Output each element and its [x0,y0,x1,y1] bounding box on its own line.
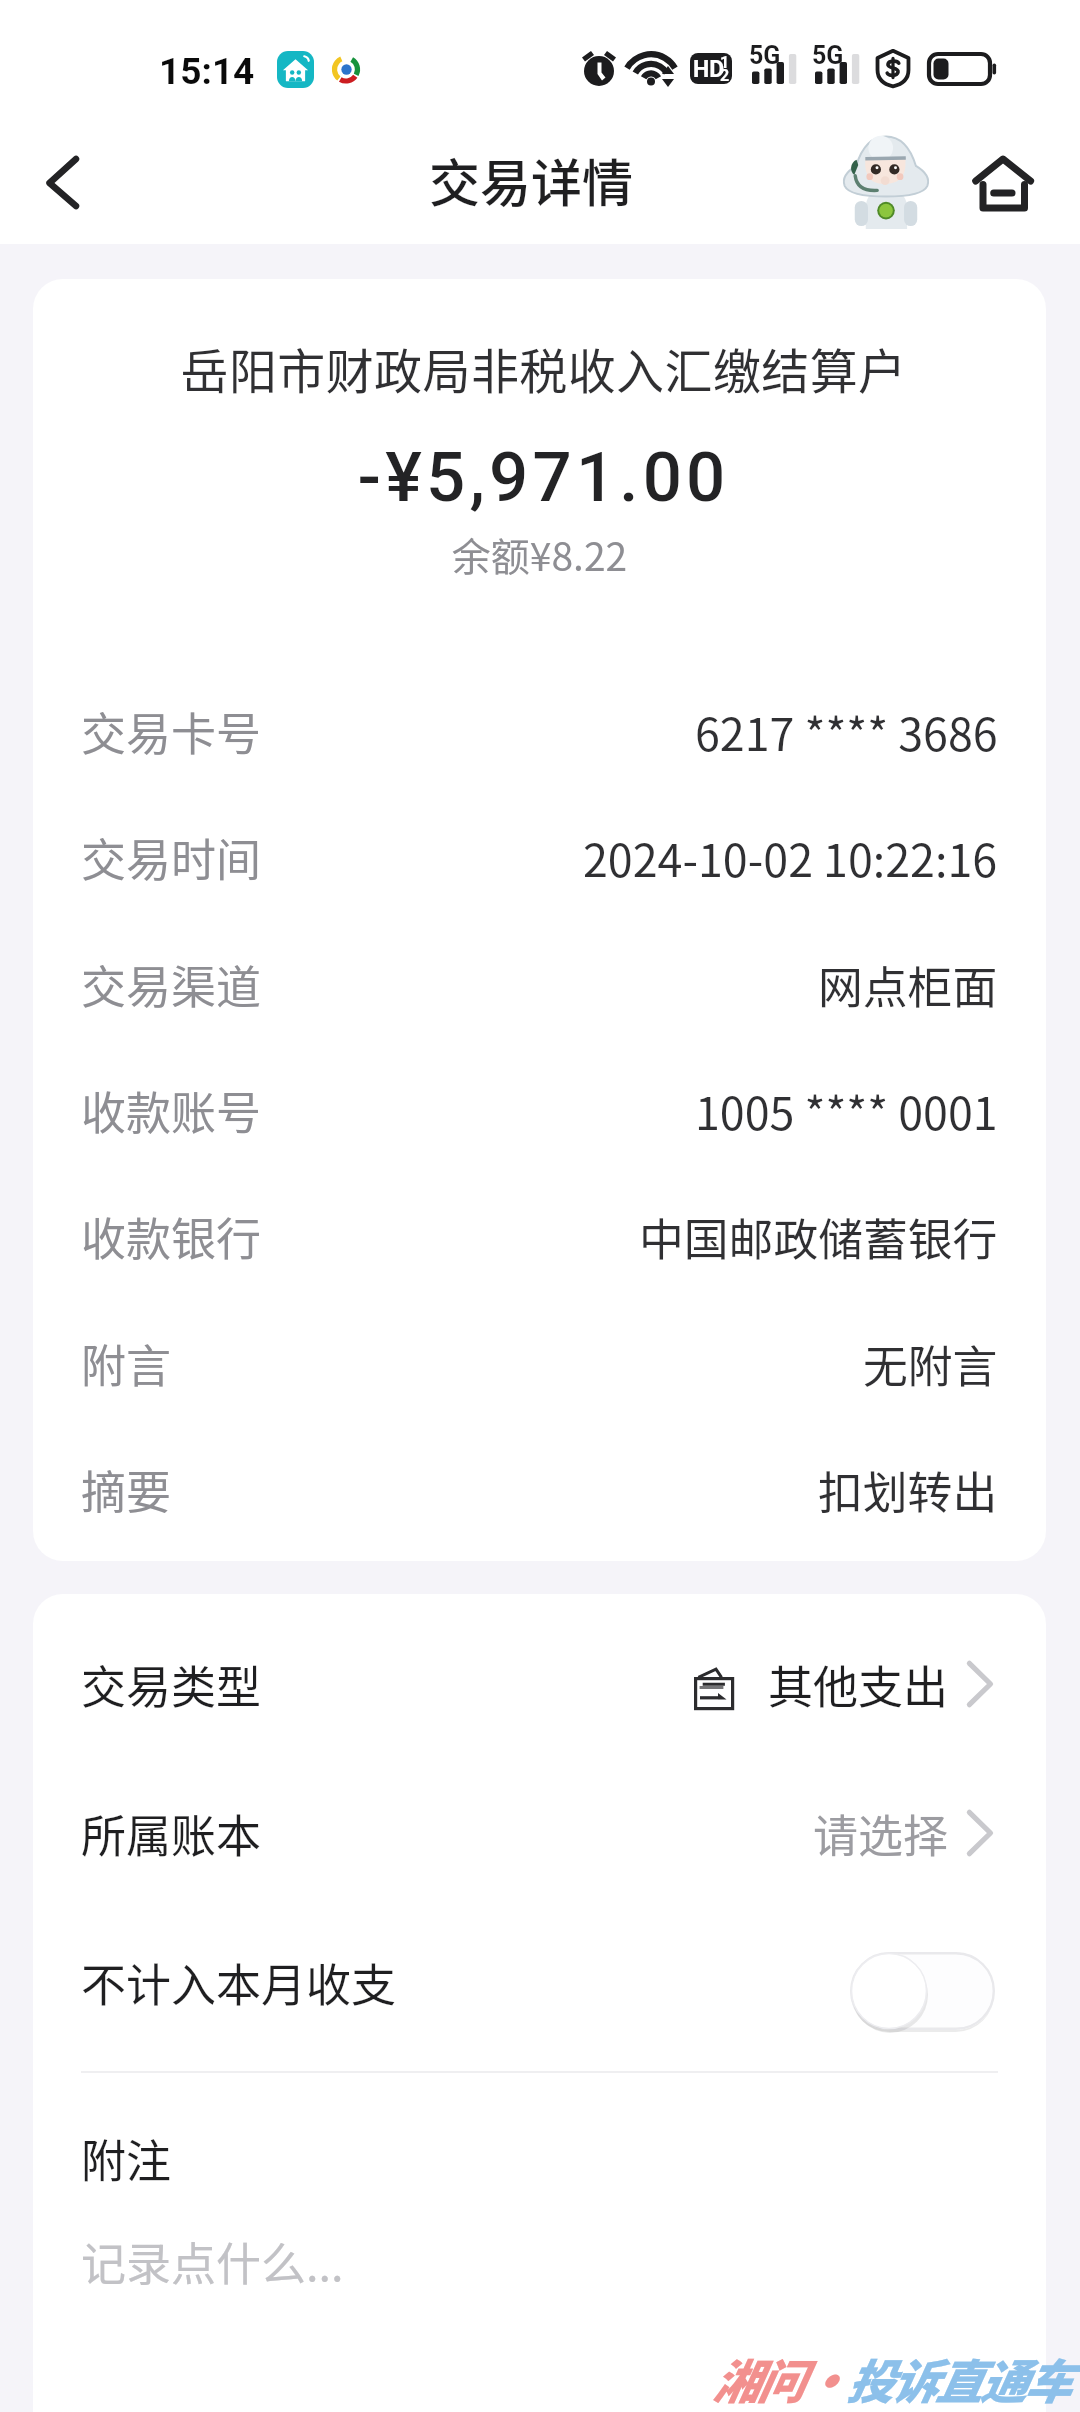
staticText: 1005 **** 0001 [695,1078,998,1143]
button[interactable]: Assistant [842,133,930,230]
staticText: 不计入本月收支 [81,1950,397,2015]
staticText: 无附言 [863,1331,998,1396]
staticText: 湘问· [712,2344,846,2412]
button[interactable]: 所属账本 [33,1759,1046,1907]
staticText: 请选择 [813,1801,949,1866]
staticText: 2024-10-02 10:22:16 [583,825,998,890]
staticText: 15:14 [159,50,255,93]
staticText: 交易时间 [81,825,262,890]
staticText: 6217 **** 3686 [695,699,998,764]
staticText: 2 [720,66,730,84]
staticText: 其他支出 [768,1652,949,1717]
staticText: 摘要 [81,1457,172,1522]
button[interactable]: 不计入本月收支 [33,1908,1046,2056]
staticText: 扣划转出 [818,1457,998,1522]
staticText: 岳阳市财政局非税收入汇缴结算户 [37,333,1046,403]
staticText: -¥5,971.00 [37,437,1046,518]
staticText: 交易渠道 [81,952,262,1017]
staticText: 交易卡号 [81,699,262,764]
staticText: 投诉直通车 [846,2344,1069,2412]
staticText: 5G [749,41,781,70]
button[interactable]: Exclude from this month [850,1952,995,2030]
staticText: 收款银行 [81,1204,262,1269]
staticText: 记录点什么... [81,2229,344,2294]
staticText: 5G [812,41,844,70]
staticText: 所属账本 [81,1801,262,1866]
staticText: 中国邮政储蓄银行 [639,1204,998,1269]
button[interactable]: Back [22,130,130,238]
staticText: 附注 [81,2126,172,2191]
button[interactable]: 交易类型 [33,1610,1046,1758]
button[interactable]: Home [952,134,1048,230]
staticText: 交易类型 [81,1652,262,1717]
staticText: 网点柜面 [818,952,998,1017]
staticText: HD [693,56,725,83]
staticText: 1 [720,53,730,72]
button[interactable]: Add a note [33,2205,1046,2325]
staticText: 收款账号 [81,1078,262,1143]
staticText: 附言 [81,1331,172,1396]
staticText: 余额¥8.22 [33,526,1046,582]
staticText: 交易详情 [429,143,634,217]
